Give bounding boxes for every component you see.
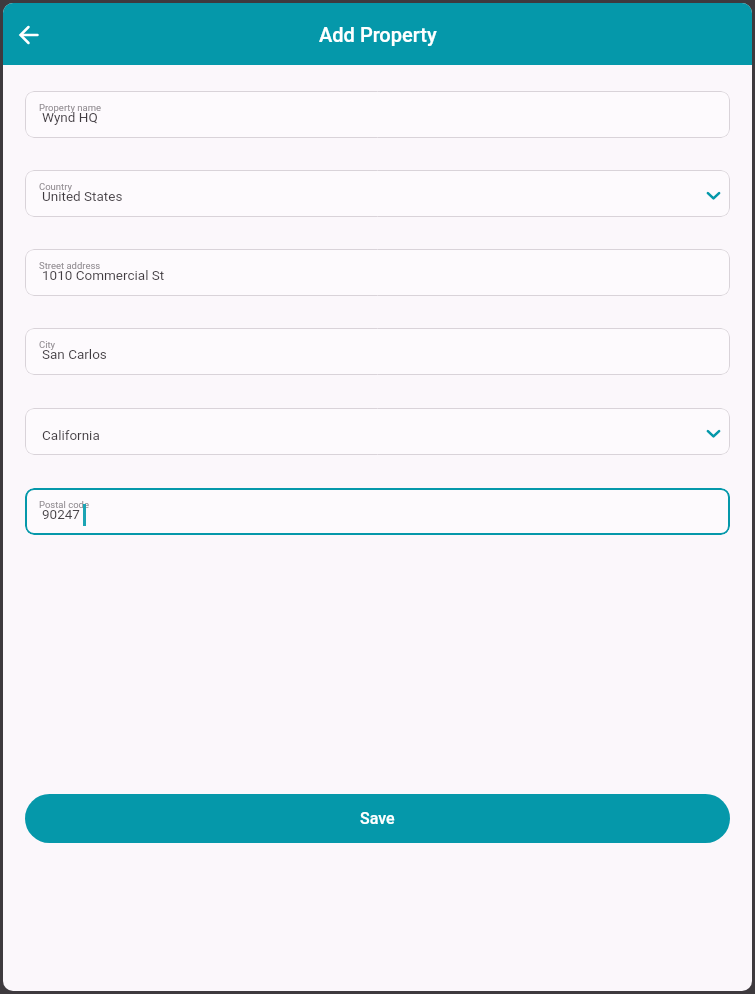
button[interactable]: Save — [25, 794, 730, 843]
button[interactable]: California — [25, 408, 730, 455]
button[interactable]: Property name — [25, 91, 730, 138]
button[interactable] — [10, 16, 48, 54]
staticText: Property name — [39, 102, 102, 113]
button[interactable]: Postal code — [25, 488, 730, 535]
staticText: California — [42, 427, 100, 443]
staticText: United States — [42, 188, 123, 204]
button[interactable]: Country — [25, 170, 730, 217]
staticText: City — [39, 339, 56, 350]
staticText: San Carlos — [42, 346, 107, 362]
staticText: 90247 — [42, 506, 80, 522]
staticText: Postal code — [39, 499, 89, 510]
button[interactable]: Street address — [25, 249, 730, 296]
staticText: Add Property — [319, 23, 437, 46]
staticText: Street address — [39, 260, 101, 271]
staticText: 1010 Commercial St — [42, 267, 165, 283]
staticText: Save — [360, 809, 395, 828]
staticText: Wynd HQ — [42, 109, 98, 125]
staticText: Country — [39, 181, 72, 192]
button[interactable]: City — [25, 328, 730, 375]
